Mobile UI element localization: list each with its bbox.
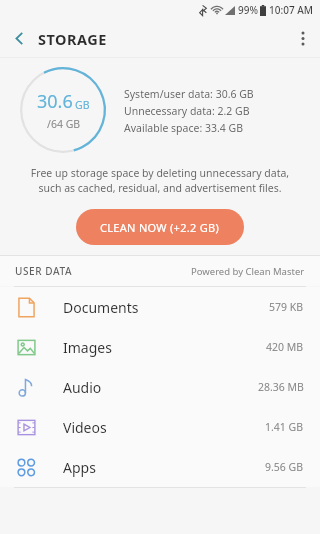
staticText: GB <box>75 98 90 112</box>
button[interactable]: Back <box>0 20 38 57</box>
button[interactable]: Documents <box>0 287 320 327</box>
staticText: Apps <box>63 458 96 477</box>
staticText: 1.41 GB <box>265 420 304 434</box>
button[interactable]: Audio <box>0 367 320 407</box>
staticText: 420 MB <box>266 340 304 354</box>
staticText: 9.56 GB <box>265 460 304 474</box>
staticText: 99% <box>238 3 258 17</box>
staticText: 10:07 AM <box>269 3 313 17</box>
button[interactable]: Videos <box>0 407 320 447</box>
staticText: 28.36 MB <box>258 380 304 394</box>
staticText: Videos <box>63 418 107 437</box>
staticText: 30.6 <box>37 89 73 114</box>
staticText: Documents <box>63 298 139 317</box>
staticText: Powered by Clean Master <box>191 265 305 278</box>
button[interactable]: Apps <box>0 447 320 487</box>
staticText: USER DATA <box>15 264 73 278</box>
staticText: Unnecessary data: 2.2 GB <box>124 104 250 118</box>
button[interactable]: Images <box>0 327 320 367</box>
staticText: System/user data: 30.6 GB <box>124 87 254 101</box>
staticText: 579 KB <box>269 300 304 314</box>
staticText: CLEAN NOW (+2.2 GB) <box>100 220 220 235</box>
staticText: Available space: 33.4 GB <box>124 121 243 135</box>
button[interactable]: CLEAN NOW (+2.2 GB) <box>76 209 244 245</box>
staticText: Images <box>63 338 112 357</box>
staticText: Free up storage space by deleting unnece… <box>20 166 300 195</box>
staticText: Audio <box>63 378 102 397</box>
staticText: /64 GB <box>47 117 81 131</box>
staticText: STORAGE <box>38 29 107 49</box>
button[interactable]: More options <box>286 20 320 57</box>
